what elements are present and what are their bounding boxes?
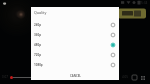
button[interactable]: CANCEL xyxy=(65,73,86,79)
staticText: CANCEL xyxy=(70,74,81,78)
button[interactable]: 480p xyxy=(31,40,119,50)
button[interactable]: 720p xyxy=(31,50,119,60)
button[interactable]: Closed captions xyxy=(132,75,137,80)
button[interactable]: 360p xyxy=(31,30,119,40)
staticText: 720p xyxy=(34,53,42,57)
staticText: 4:05 xyxy=(122,75,128,79)
staticText: 360p xyxy=(34,33,42,37)
staticText: 240p xyxy=(34,23,42,27)
staticText: 480p xyxy=(34,43,42,47)
staticText: 5:34 xyxy=(141,1,148,5)
staticText: Quality xyxy=(34,10,47,15)
button[interactable]: 240p xyxy=(31,20,119,30)
staticText: 1080p xyxy=(34,63,43,67)
button[interactable]: Fullscreen xyxy=(141,76,145,80)
button[interactable]: 1080p xyxy=(31,60,119,70)
staticText: 0:07 xyxy=(2,75,8,79)
